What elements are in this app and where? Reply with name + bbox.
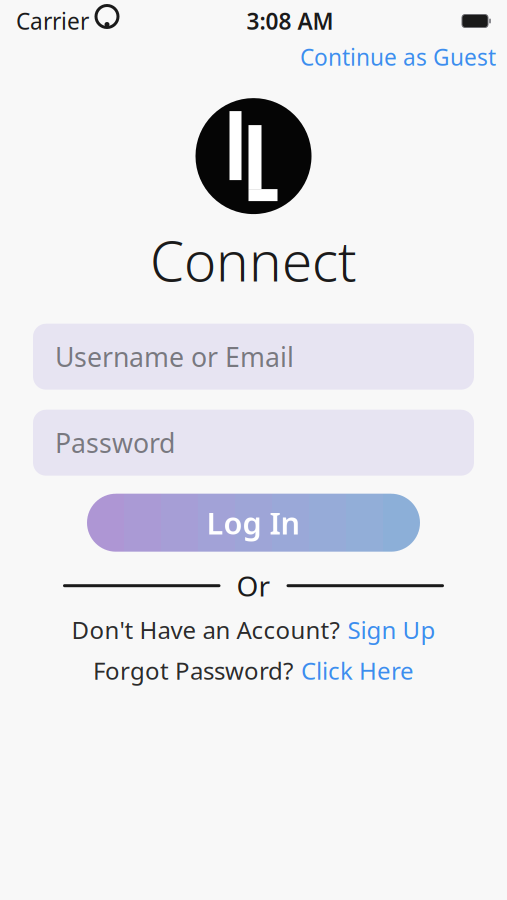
- staticText: Log In: [206, 502, 300, 543]
- staticText: Sign Up: [347, 614, 435, 646]
- staticText: Click Here: [301, 655, 414, 686]
- button[interactable]: Continue as Guest: [300, 42, 496, 72]
- button[interactable]: Log In: [0, 494, 507, 552]
- button[interactable]: Click Here: [301, 655, 414, 686]
- staticText: Or: [236, 567, 270, 604]
- staticText: Continue as Guest: [300, 42, 496, 72]
- staticText: Carrier: [16, 6, 89, 36]
- staticText: Username or Email: [55, 339, 294, 374]
- staticText: Forgot Password?: [93, 655, 293, 686]
- staticText: Don't Have an Account?: [71, 614, 339, 646]
- staticText: Connect: [150, 224, 357, 297]
- staticText: Password: [55, 425, 175, 460]
- button[interactable]: Sign Up: [347, 614, 435, 646]
- staticText: 3:08 AM: [246, 6, 333, 36]
